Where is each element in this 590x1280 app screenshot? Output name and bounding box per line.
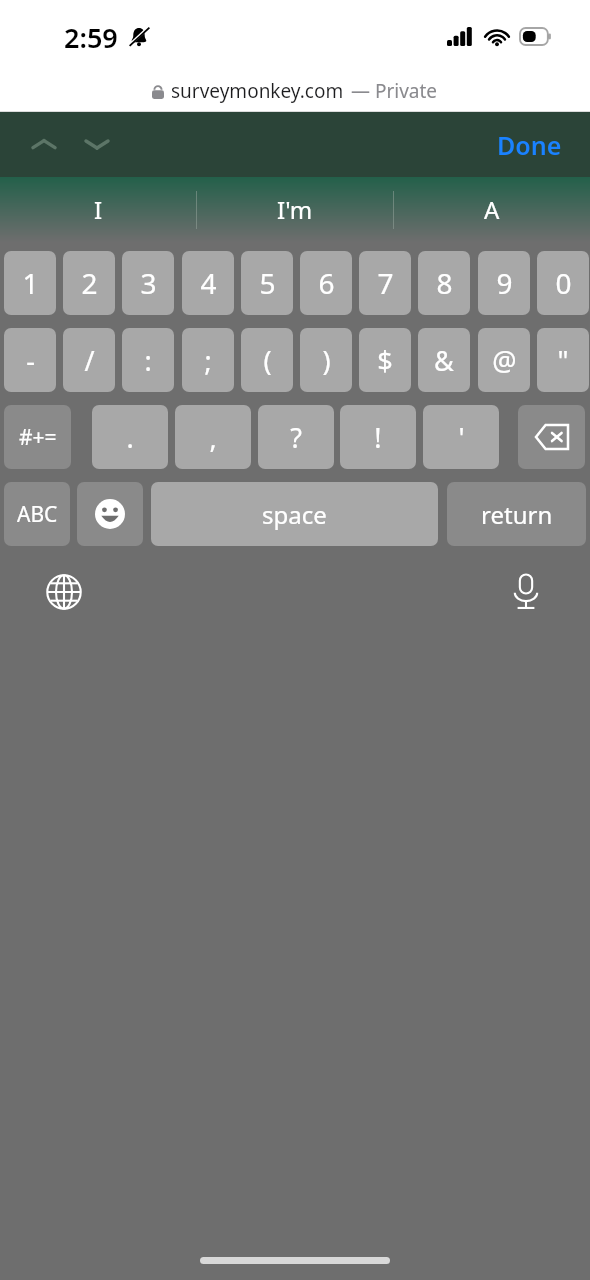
button[interactable]: ! [340,405,416,469]
staticText: ? [290,419,302,456]
button[interactable]: space [151,482,438,546]
staticText: @ [492,342,517,379]
button[interactable]: Done [497,128,562,162]
button[interactable]: Change keyboard [38,566,90,618]
staticText: 9 [496,264,513,302]
staticText: ( [263,342,272,379]
staticText: 6 [318,264,335,302]
staticText: " [557,342,569,379]
staticText: , [209,419,217,456]
staticText: ' [458,419,465,456]
button[interactable]: - [4,328,56,392]
button[interactable]: #+= [4,405,71,469]
staticText: ABC [17,500,58,529]
button[interactable]: A [394,177,590,242]
staticText: ; [204,342,212,379]
button[interactable]: return [447,482,586,546]
staticText: 3 [140,264,157,302]
staticText: 1 [22,264,39,302]
button[interactable]: Emoji [77,482,143,546]
staticText: : [144,342,152,379]
staticText: ! [374,419,382,456]
staticText: / [84,342,95,379]
button[interactable]: 8 [418,251,470,315]
button[interactable]: I [0,177,196,242]
staticText: 8 [436,264,453,302]
staticText: 5 [259,264,276,302]
button[interactable]: $ [359,328,411,392]
button[interactable]: , [175,405,251,469]
staticText: - [26,342,35,379]
staticText: 0 [555,264,572,302]
button[interactable]: Previous field [24,125,64,165]
staticText: $ [377,342,393,379]
button[interactable]: 9 [478,251,530,315]
button[interactable]: " [537,328,589,392]
staticText: A [484,193,500,226]
staticText: 7 [377,264,394,302]
button[interactable]: ABC [4,482,70,546]
button[interactable]: 7 [359,251,411,315]
button[interactable]: 3 [122,251,174,315]
button[interactable]: I'm [197,177,393,242]
button[interactable]: ? [258,405,334,469]
button[interactable]: / [63,328,115,392]
staticText: surveymonkey.com [171,78,344,104]
button[interactable]: 5 [241,251,293,315]
staticText: return [481,498,553,531]
staticText: — Private [351,78,438,104]
button[interactable]: ' [423,405,499,469]
staticText: . [126,419,134,456]
button[interactable]: 0 [537,251,589,315]
staticText: 4 [200,264,217,302]
button[interactable]: surveymonkey.com [0,70,590,112]
button[interactable]: ) [300,328,352,392]
staticText: I [94,193,103,226]
staticText: ) [322,342,331,379]
button[interactable]: Delete [518,405,585,469]
button[interactable]: 4 [182,251,234,315]
button[interactable]: 2 [63,251,115,315]
staticText: I'm [277,193,313,226]
button[interactable]: 1 [4,251,56,315]
button[interactable]: ; [182,328,234,392]
button[interactable]: 6 [300,251,352,315]
staticText: & [434,342,454,379]
button[interactable]: ( [241,328,293,392]
staticText: Done [497,128,562,162]
button[interactable]: . [92,405,168,469]
staticText: 2 [81,264,98,302]
button[interactable]: & [418,328,470,392]
staticText: space [262,498,327,531]
button[interactable]: Dictation [500,566,552,618]
staticText: 2:59 [64,19,118,56]
button[interactable]: Next field [77,125,117,165]
button[interactable]: : [122,328,174,392]
staticText: #+= [19,423,57,452]
button[interactable]: @ [478,328,530,392]
